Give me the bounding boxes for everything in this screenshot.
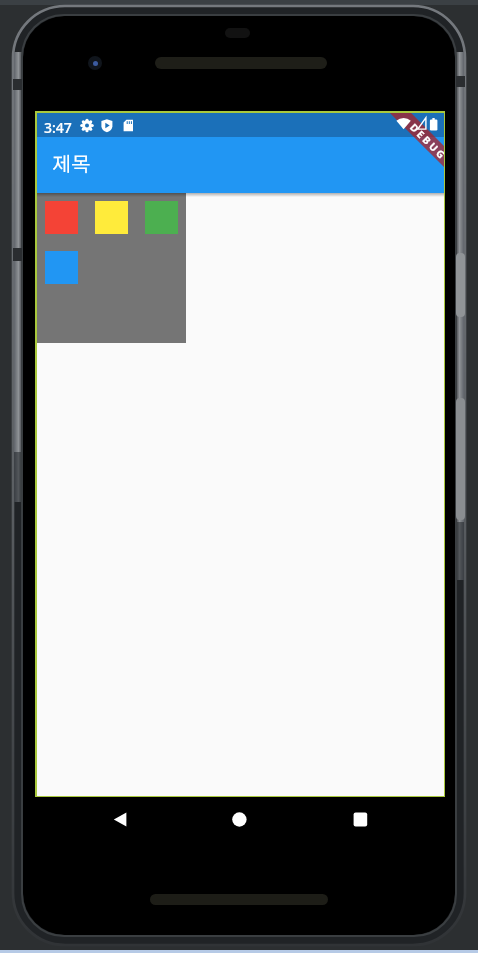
button[interactable]: [308, 797, 445, 857]
button[interactable]: [35, 797, 171, 857]
button[interactable]: [171, 797, 308, 857]
staticText: 제목: [52, 155, 91, 175]
staticText: DEBUG: [407, 120, 444, 163]
staticText: 3:47: [44, 118, 72, 137]
